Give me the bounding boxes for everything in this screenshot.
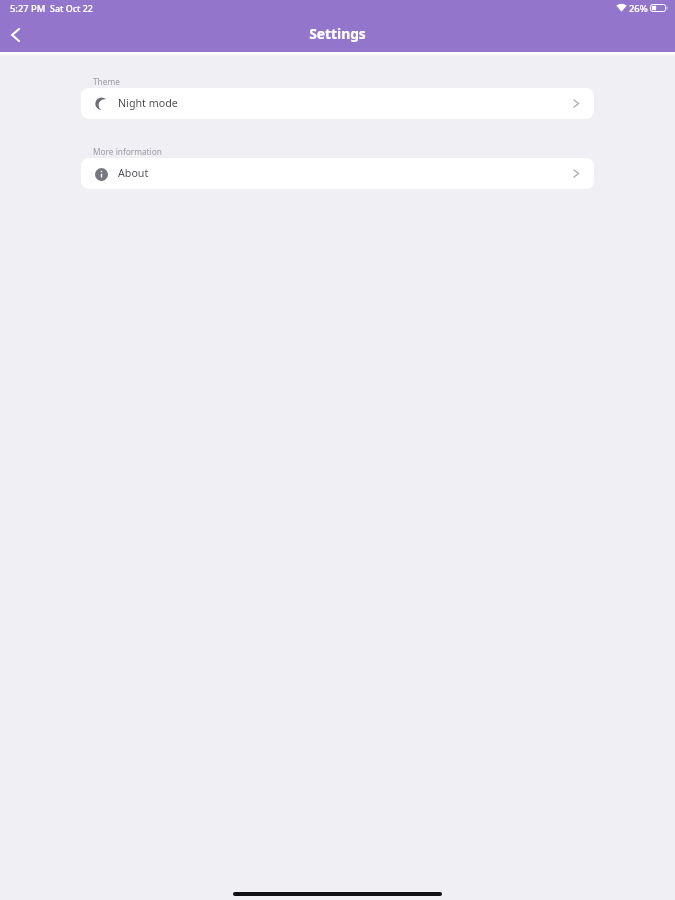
button[interactable]: Night mode	[81, 88, 594, 119]
staticText: Night mode	[118, 96, 178, 111]
staticText: 26%	[629, 2, 648, 15]
staticText: Sat Oct 22	[50, 2, 93, 14]
button[interactable]: About	[81, 158, 594, 189]
staticText: About	[118, 166, 149, 181]
staticText: More information	[93, 146, 162, 157]
staticText: Settings	[309, 24, 366, 43]
staticText: Theme	[93, 76, 120, 87]
button[interactable]: Back	[0, 20, 30, 50]
staticText: 5:27 PM	[10, 2, 46, 15]
